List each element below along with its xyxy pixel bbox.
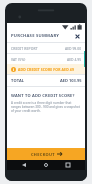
button[interactable]: CHECKOUT	[7, 148, 85, 160]
staticText: WANT TO ADD CREDIT SCORE?	[11, 93, 75, 98]
button[interactable]: Recents	[63, 160, 73, 170]
staticText: AED 4.95	[67, 57, 82, 62]
staticText: A credit score is a three digit number t…	[11, 101, 81, 113]
button[interactable]: Back	[19, 160, 29, 170]
staticText: VAT (5%)	[11, 57, 67, 62]
button[interactable]: Close	[73, 32, 82, 41]
staticText: AED 103.95	[60, 78, 82, 83]
staticText: ADD CREDIT SCORE FOR AED 49	[18, 67, 82, 72]
button[interactable]: VAT (5%)	[7, 54, 85, 64]
staticText: AED 99.00	[65, 46, 82, 51]
button[interactable]: CREDIT REPORT	[7, 43, 85, 53]
staticText: PURCHASE SUMMARY	[11, 33, 73, 39]
staticText: CREDIT REPORT	[11, 46, 65, 51]
staticText: CHECKOUT	[31, 152, 55, 157]
staticText: i	[13, 68, 14, 72]
staticText: TOTAL	[11, 78, 60, 83]
button[interactable]: Home	[41, 160, 51, 170]
button[interactable]: i	[7, 64, 85, 74]
